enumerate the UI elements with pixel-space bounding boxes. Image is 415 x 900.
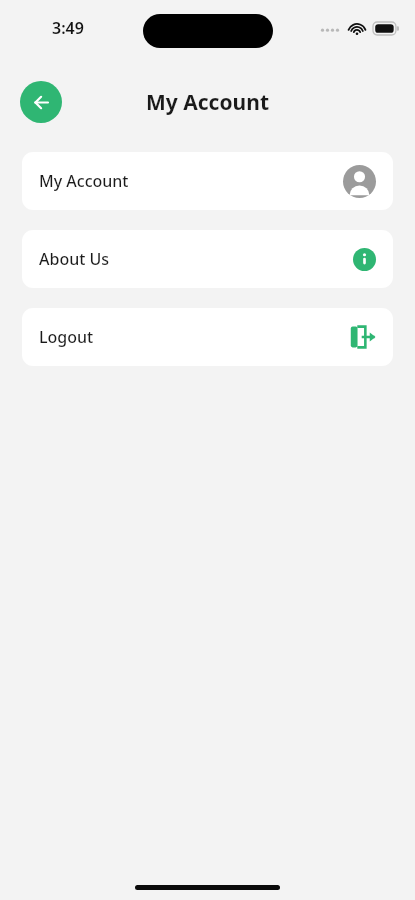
staticText: My Account	[146, 88, 269, 117]
staticText: My Account	[39, 170, 129, 192]
staticText: 3:49	[52, 17, 84, 39]
staticText: About Us	[39, 248, 110, 270]
button[interactable]: Back	[20, 81, 62, 123]
staticText: Logout	[39, 326, 94, 348]
button[interactable]: About Us	[22, 230, 393, 288]
button[interactable]: My Account	[22, 152, 393, 210]
button[interactable]: Logout	[22, 308, 393, 366]
